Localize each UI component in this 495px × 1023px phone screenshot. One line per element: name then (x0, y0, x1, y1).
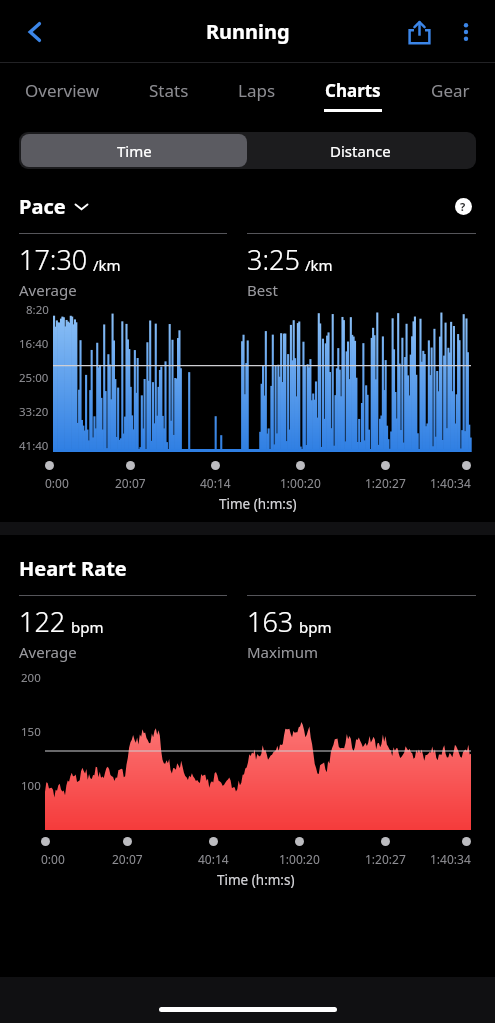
staticText: Time (117, 141, 152, 161)
staticText: Stats (149, 79, 189, 102)
button[interactable]: Overview (0, 63, 124, 117)
staticText: bpm (299, 617, 332, 637)
staticText: Time (h:m:s) (219, 495, 297, 513)
button[interactable]: Share (395, 8, 443, 56)
staticText: 40:14 (198, 851, 229, 867)
staticText: 41:40 (19, 438, 49, 454)
staticText: Gear (431, 79, 470, 102)
button[interactable]: Laps (214, 63, 300, 117)
button[interactable]: Time (21, 134, 247, 167)
staticText: 40:14 (200, 475, 231, 491)
staticText: Heart Rate (19, 555, 127, 582)
staticText: Running (206, 18, 290, 45)
staticText: Average (19, 642, 77, 662)
staticText: Overview (25, 79, 100, 102)
staticText: ? (460, 199, 466, 214)
button[interactable]: Pace (19, 193, 89, 220)
staticText: Maximum (247, 642, 319, 662)
staticText: 25:00 (19, 370, 49, 386)
button[interactable]: Gear (405, 63, 495, 117)
staticText: 122 (19, 603, 66, 640)
staticText: Laps (238, 79, 276, 102)
staticText: /km (305, 255, 333, 275)
button[interactable]: Stats (124, 63, 214, 117)
staticText: Time (h:m:s) (217, 871, 295, 889)
button[interactable]: Back (12, 9, 58, 55)
staticText: Best (247, 280, 278, 300)
button[interactable]: Distance (247, 134, 474, 167)
button[interactable]: Help (450, 193, 476, 219)
staticText: /km (93, 255, 121, 275)
staticText: Average (19, 280, 77, 300)
staticText: 1:40:34 (430, 851, 471, 867)
staticText: 17:30 (19, 241, 88, 278)
staticText: 163 (247, 603, 294, 640)
staticText: 20:07 (115, 475, 146, 491)
staticText: 3:25 (247, 241, 300, 278)
button[interactable]: Heart Rate (19, 555, 127, 582)
staticText: 200 (21, 670, 41, 686)
staticText: 0:00 (41, 851, 65, 867)
staticText: Distance (330, 141, 391, 161)
staticText: 0:00 (45, 475, 69, 491)
staticText: 1:00:20 (279, 851, 320, 867)
staticText: 100 (21, 778, 41, 794)
staticText: Charts (325, 79, 381, 102)
button[interactable]: Charts (300, 63, 405, 117)
staticText: 8:20 (26, 302, 49, 318)
staticText: 16:40 (19, 336, 49, 352)
staticText: 1:40:34 (430, 475, 471, 491)
staticText: Pace (19, 193, 66, 220)
staticText: 150 (21, 724, 41, 740)
staticText: 1:20:27 (365, 475, 406, 491)
staticText: 1:20:27 (365, 851, 406, 867)
button[interactable]: More options (443, 9, 489, 55)
staticText: 33:20 (19, 404, 49, 420)
staticText: 20:07 (112, 851, 143, 867)
staticText: bpm (71, 617, 104, 637)
staticText: 1:00:20 (280, 475, 321, 491)
